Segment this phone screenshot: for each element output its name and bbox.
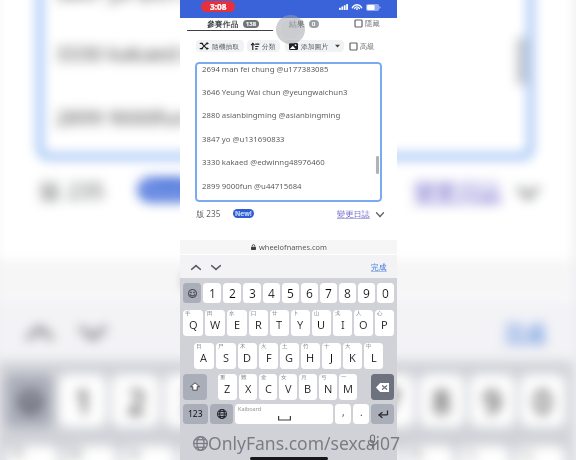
- button[interactable]: 完成: [504, 318, 547, 345]
- button[interactable]: 2694 man fei chung @u177383085: [195, 62, 382, 202]
- button[interactable]: 2: [223, 283, 241, 303]
- button[interactable]: 5: [268, 374, 313, 427]
- button[interactable]: 3: [164, 374, 212, 427]
- button[interactable]: 女: [279, 374, 297, 400]
- button[interactable]: 山: [312, 310, 331, 336]
- button[interactable]: 口: [180, 446, 231, 460]
- button[interactable]: 人: [459, 446, 509, 460]
- button[interactable]: 弓: [319, 374, 337, 400]
- button[interactable]: 難: [239, 374, 257, 400]
- button[interactable]: 土: [280, 343, 299, 369]
- button[interactable]: 水: [122, 446, 175, 460]
- button[interactable]: Next field: [210, 261, 222, 273]
- button[interactable]: 0: [520, 374, 565, 427]
- button[interactable]: 8: [339, 283, 356, 303]
- button[interactable]: Backspace: [371, 374, 394, 400]
- button[interactable]: Previous field: [24, 316, 56, 348]
- button[interactable]: 9: [358, 283, 375, 303]
- button[interactable]: 4: [263, 283, 280, 303]
- button[interactable]: 心: [515, 446, 565, 460]
- button[interactable]: 重: [218, 374, 237, 400]
- staticText: 添加圖片: [301, 42, 329, 51]
- button[interactable]: 123: [183, 404, 208, 424]
- staticText: N: [324, 381, 333, 396]
- button[interactable]: 金: [259, 374, 277, 400]
- button[interactable]: 戈: [403, 446, 454, 460]
- button[interactable]: 9: [470, 374, 515, 427]
- button[interactable]: 3: [243, 283, 261, 303]
- staticText: 隱藏: [365, 19, 380, 28]
- button[interactable]: Switch keyboard: [210, 404, 233, 424]
- button[interactable]: 隱藏: [355, 19, 380, 28]
- button[interactable]: 木: [238, 343, 257, 369]
- staticText: 口: [251, 310, 257, 317]
- staticText: 隨機抽取: [212, 42, 240, 51]
- button[interactable]: Emoji: [183, 283, 201, 303]
- button[interactable]: 分類: [247, 40, 280, 52]
- button[interactable]: 卜: [291, 310, 310, 336]
- staticText: ,: [342, 405, 345, 419]
- button[interactable]: 5: [282, 283, 299, 303]
- button[interactable]: 結果: [289, 19, 319, 29]
- button[interactable]: 心: [375, 310, 394, 336]
- button[interactable]: 日: [194, 343, 214, 369]
- button[interactable]: 水: [227, 310, 247, 336]
- button[interactable]: 4: [218, 374, 263, 427]
- button[interactable]: Return: [371, 404, 394, 424]
- button[interactable]: 0: [377, 283, 394, 303]
- button[interactable]: 人: [354, 310, 373, 336]
- button[interactable]: 火: [259, 343, 278, 369]
- staticText: 分類: [262, 42, 276, 51]
- button[interactable]: 變更日誌: [337, 209, 384, 219]
- staticText: 3847 yo @u131690833: [56, 0, 276, 8]
- button[interactable]: 2694 man fei chung @u177383085: [37, 0, 533, 159]
- button[interactable]: .: [353, 404, 369, 424]
- button[interactable]: 7: [320, 283, 337, 303]
- button[interactable]: 1: [203, 283, 221, 303]
- button[interactable]: 6: [318, 374, 364, 427]
- button[interactable]: 1: [58, 374, 106, 427]
- staticText: 3: [249, 285, 256, 301]
- button[interactable]: Shift: [183, 374, 207, 400]
- button[interactable]: ,: [335, 404, 351, 424]
- staticText: 結果: [289, 19, 305, 29]
- button[interactable]: 手: [5, 446, 58, 460]
- button[interactable]: 廿: [270, 310, 289, 336]
- button[interactable]: 手: [183, 310, 203, 336]
- button[interactable]: 完成: [371, 262, 387, 272]
- button[interactable]: 戈: [333, 310, 352, 336]
- button[interactable]: 中: [364, 343, 383, 369]
- button[interactable]: 參賽作品: [207, 19, 259, 29]
- button[interactable]: Kaiboard: [235, 404, 333, 424]
- button[interactable]: 十: [322, 343, 341, 369]
- button[interactable]: 高級: [350, 42, 375, 51]
- button[interactable]: 尸: [216, 343, 236, 369]
- button[interactable]: Previous field: [190, 261, 202, 273]
- button[interactable]: 月: [299, 374, 317, 400]
- button[interactable]: 隨機抽取: [196, 40, 244, 52]
- staticText: W: [210, 317, 221, 332]
- button[interactable]: 添加圖片: [285, 40, 344, 52]
- staticText: S: [223, 350, 230, 365]
- button[interactable]: 大: [343, 343, 362, 369]
- button[interactable]: 山: [348, 446, 398, 460]
- button[interactable]: 廿: [236, 446, 287, 460]
- button[interactable]: 6: [301, 283, 318, 303]
- button[interactable]: Emoji: [5, 374, 53, 427]
- button[interactable]: 2: [111, 374, 159, 427]
- button[interactable]: 田: [64, 446, 117, 460]
- button[interactable]: 8: [419, 374, 464, 427]
- button[interactable]: 一: [339, 374, 357, 400]
- staticText: wheelofnames.com: [207, 265, 387, 292]
- button[interactable]: 7: [369, 374, 414, 427]
- button[interactable]: 田: [205, 310, 225, 336]
- button[interactable]: 變更日誌: [414, 178, 539, 204]
- staticText: Y: [297, 317, 304, 332]
- staticText: 1: [74, 379, 93, 422]
- button[interactable]: 竹: [301, 343, 320, 369]
- button[interactable]: 卜: [292, 446, 342, 460]
- button[interactable]: 口: [249, 310, 268, 336]
- staticText: 參賽作品: [207, 19, 239, 29]
- button[interactable]: Next field: [77, 316, 109, 348]
- staticText: 口: [186, 446, 202, 460]
